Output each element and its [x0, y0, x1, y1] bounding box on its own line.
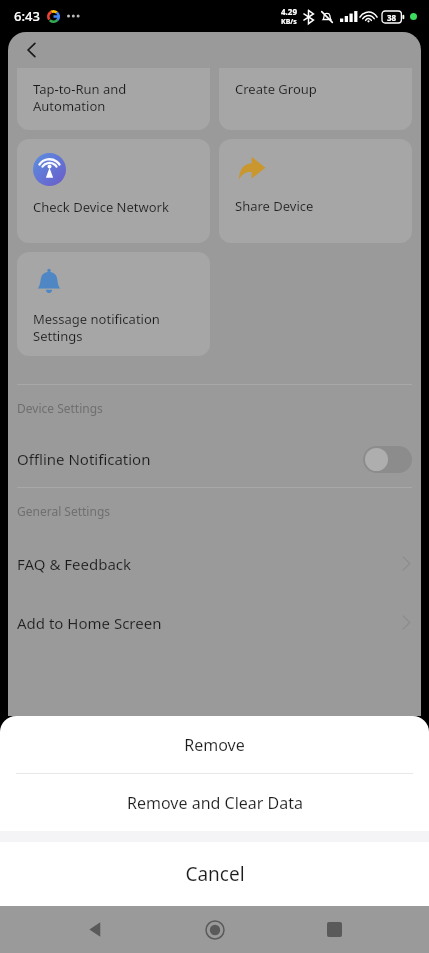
staticText: KB/s: [281, 17, 297, 27]
button[interactable]: Offline Notification: [8, 431, 421, 487]
staticText: Add to Home Screen: [17, 613, 162, 633]
button[interactable]: Home: [191, 906, 239, 953]
staticText: Message notification Settings: [33, 310, 160, 345]
button[interactable]: Tap-to-Run and Automation: [17, 68, 210, 130]
staticText: 38: [387, 12, 397, 23]
staticText: Device Settings: [17, 400, 103, 416]
button[interactable]: Back: [71, 906, 119, 953]
button[interactable]: Remove: [0, 716, 429, 773]
button[interactable]: Add to Home Screen: [8, 593, 421, 652]
button[interactable]: FAQ & Feedback: [8, 534, 421, 593]
button[interactable]: Check Device Network: [17, 139, 210, 243]
staticText: General Settings: [17, 503, 111, 519]
staticText: Remove: [184, 734, 245, 756]
button[interactable]: Cancel: [0, 842, 429, 906]
staticText: FAQ & Feedback: [17, 554, 132, 574]
staticText: Tap-to-Run and Automation: [33, 80, 127, 115]
staticText: Create Group: [235, 80, 317, 98]
staticText: Check Device Network: [33, 198, 169, 216]
staticText: 6:43: [14, 7, 40, 25]
staticText: 4.29: [281, 6, 297, 17]
staticText: Offline Notification: [17, 449, 151, 469]
button[interactable]: Message notification Settings: [17, 252, 210, 356]
staticText: Remove and Clear Data: [127, 792, 303, 814]
button[interactable]: Back: [14, 32, 50, 68]
button[interactable]: Recent apps: [310, 906, 358, 953]
button[interactable]: Create Group: [219, 68, 412, 130]
button[interactable]: Remove and Clear Data: [0, 774, 429, 831]
button[interactable]: Share Device: [219, 139, 412, 243]
staticText: Share Device: [235, 197, 314, 215]
staticText: Cancel: [185, 861, 245, 887]
